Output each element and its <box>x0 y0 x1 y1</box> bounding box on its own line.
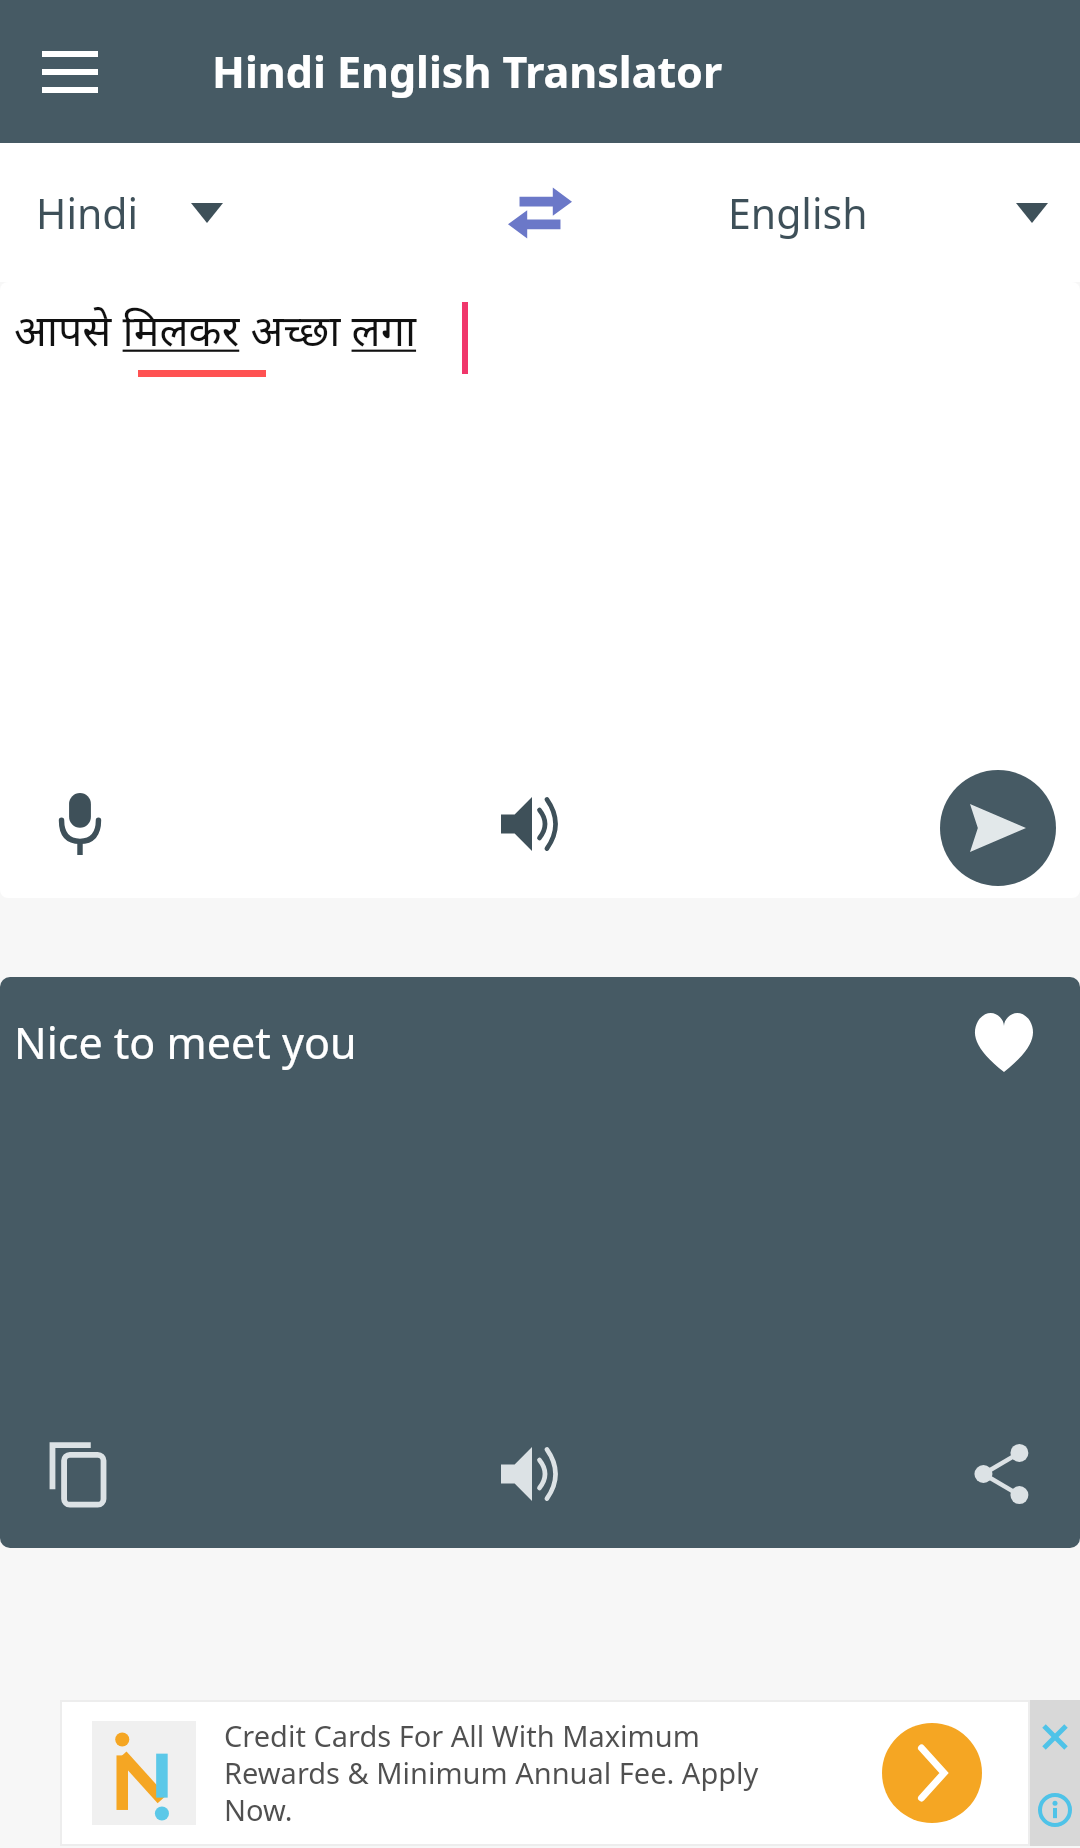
button[interactable]: Ad info <box>1030 1773 1080 1846</box>
button[interactable]: Speak input <box>484 776 580 872</box>
button[interactable]: Hindi <box>36 158 326 268</box>
staticText: English <box>728 185 868 241</box>
button[interactable]: Swap languages <box>488 161 592 265</box>
button[interactable]: Open ad <box>882 1723 982 1823</box>
button[interactable]: Share <box>954 1426 1050 1522</box>
button[interactable]: Credit Cards For All With Maximum Reward… <box>62 1702 1028 1844</box>
button[interactable]: Menu <box>20 22 120 122</box>
staticText: आपसे मिलकर अच्छा लगा <box>14 300 417 359</box>
staticText: Hindi <box>36 185 139 241</box>
staticText: Nice to meet you <box>14 1013 357 1072</box>
button[interactable]: Voice input <box>32 776 128 872</box>
staticText: Credit Cards For All With Maximum Reward… <box>224 1716 759 1830</box>
staticText: Hindi English Translator <box>212 42 723 101</box>
button[interactable]: Copy <box>30 1426 126 1522</box>
button[interactable]: English <box>728 158 1048 268</box>
button[interactable]: Translate <box>940 770 1056 886</box>
button[interactable]: Close ad <box>1030 1700 1080 1773</box>
button[interactable]: Favourite <box>954 991 1054 1091</box>
button[interactable]: Speak translation <box>484 1426 580 1522</box>
